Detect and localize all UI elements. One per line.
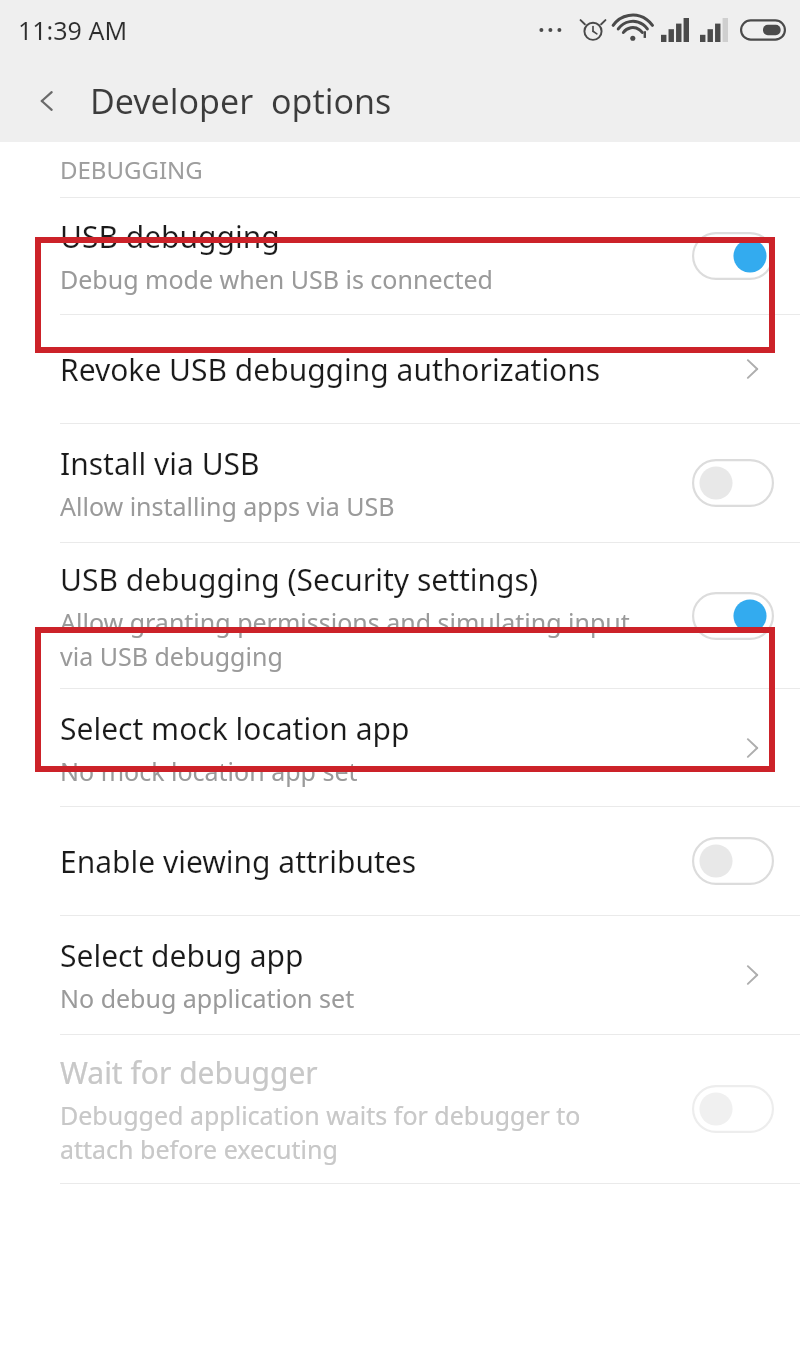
button[interactable]: USB debugging [0,198,800,314]
staticText: No mock location app set [60,754,358,788]
button[interactable]: Toggle off [692,1085,774,1133]
button[interactable]: Wait for debugger [0,1035,800,1183]
button[interactable]: Select mock location app [0,689,800,806]
staticText: Select debug app [60,935,304,976]
button[interactable]: Toggle off [692,459,774,507]
button[interactable]: USB debugging (Security settings) [0,543,800,688]
button[interactable]: Toggle off [692,837,774,885]
button[interactable]: Back [22,76,72,126]
staticText: Revoke USB debugging authorizations [60,349,601,390]
staticText: 11:39 AM [18,13,128,47]
button[interactable]: Install via USB [0,424,800,542]
staticText: DEBUGGING [60,153,203,186]
staticText: No debug application set [60,981,355,1015]
staticText: USB debugging [60,216,280,257]
other: Open [730,953,774,997]
staticText: USB debugging (Security settings) [60,559,538,600]
staticText: Enable viewing attributes [60,841,417,882]
staticText: Developer options [90,78,392,124]
button[interactable]: Enable viewing attributes [0,807,800,915]
staticText: Debugged application waits for debugger … [60,1098,581,1166]
staticText: Allow granting permissions and simulatin… [60,605,630,673]
staticText: Allow installing apps via USB [60,489,395,523]
other: Open [730,726,774,770]
staticText: Debug mode when USB is connected [60,262,493,296]
staticText: Install via USB [60,443,260,484]
button[interactable]: Select debug app [0,916,800,1034]
button[interactable]: Toggle on [692,592,774,640]
button[interactable]: Revoke USB debugging authorizations [0,315,800,423]
other: Open [730,347,774,391]
button[interactable]: Toggle on [692,232,774,280]
staticText: Wait for debugger [60,1052,318,1093]
staticText: Select mock location app [60,708,410,749]
